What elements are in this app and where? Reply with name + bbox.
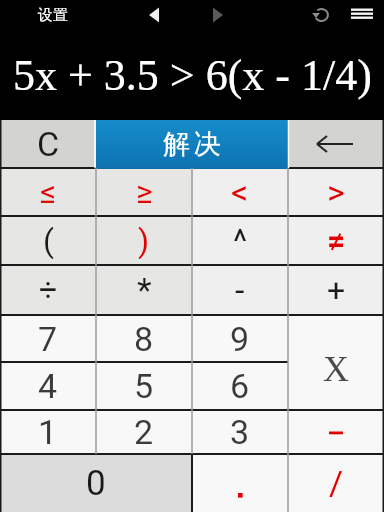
button[interactable] — [288, 120, 384, 168]
staticText: 5 — [134, 366, 154, 406]
staticText: ≠ — [327, 222, 346, 260]
staticText: ( — [43, 222, 54, 260]
staticText: ^ — [233, 221, 248, 261]
button[interactable]: + — [288, 265, 384, 315]
button[interactable]: 设置 — [0, 0, 120, 30]
staticText: > — [327, 172, 345, 212]
button[interactable]: ≥ — [96, 168, 192, 216]
button[interactable]: 1 — [0, 410, 96, 454]
button[interactable]: 6 — [192, 362, 288, 410]
button[interactable]: ≠ — [288, 216, 384, 265]
staticText: < — [231, 172, 249, 212]
button[interactable]: ^ — [192, 216, 288, 265]
button[interactable]: 5x + 3.5 > 6(x - 1/4) — [0, 30, 384, 120]
staticText: ) — [138, 222, 150, 260]
staticText: ÷ — [39, 271, 58, 309]
button[interactable]: ÷ — [0, 265, 96, 315]
staticText: - — [235, 270, 245, 310]
button[interactable] — [130, 0, 180, 30]
button[interactable]: ≤ — [0, 168, 96, 216]
button[interactable]: - — [192, 265, 288, 315]
staticText: X — [323, 349, 349, 389]
staticText: + — [327, 271, 346, 309]
staticText: ≥ — [136, 173, 153, 211]
button[interactable]: X — [288, 315, 384, 410]
button[interactable]: C — [0, 120, 96, 168]
staticText: 2 — [134, 412, 154, 452]
button[interactable]: 解决 — [96, 120, 288, 168]
staticText: 解决 — [161, 127, 223, 161]
button[interactable]: / — [288, 454, 384, 512]
staticText: 7 — [38, 319, 58, 359]
button[interactable]: 9 — [192, 315, 288, 362]
button[interactable]: 8 — [96, 315, 192, 362]
staticText: 9 — [230, 319, 250, 359]
button[interactable]: < — [192, 168, 288, 216]
staticText: 1 — [38, 412, 58, 452]
button[interactable]: 3 — [192, 410, 288, 454]
staticText: 0 — [86, 463, 106, 504]
button[interactable]: 4 — [0, 362, 96, 410]
button[interactable]: 7 — [0, 315, 96, 362]
button[interactable] — [180, 0, 230, 30]
button[interactable]: 5 — [96, 362, 192, 410]
button[interactable] — [192, 454, 288, 512]
staticText: 5x + 3.5 > 6(x - 1/4) — [13, 51, 372, 100]
staticText: 6 — [230, 366, 250, 406]
button[interactable] — [288, 410, 384, 454]
staticText: 4 — [38, 366, 58, 406]
button[interactable]: > — [288, 168, 384, 216]
staticText: ≤ — [40, 173, 57, 211]
staticText: 3 — [230, 412, 250, 452]
staticText: 设置 — [38, 6, 68, 25]
button[interactable]: ) — [96, 216, 192, 265]
staticText: / — [329, 463, 344, 503]
button[interactable]: 2 — [96, 410, 192, 454]
button[interactable]: ( — [0, 216, 96, 265]
staticText: C — [37, 124, 60, 164]
staticText: 8 — [134, 319, 154, 359]
button[interactable]: * — [96, 265, 192, 315]
staticText: * — [137, 270, 152, 310]
button[interactable]: 0 — [0, 454, 192, 512]
